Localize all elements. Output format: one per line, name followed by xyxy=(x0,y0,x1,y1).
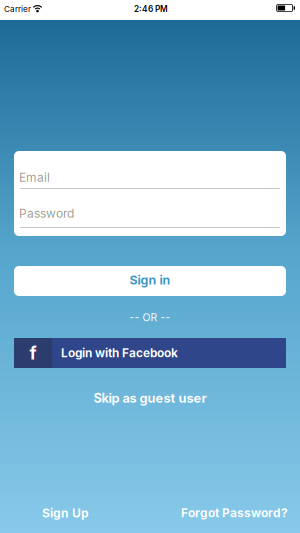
button[interactable]: Forgot Password? xyxy=(181,505,288,521)
button[interactable]: Skip as guest user xyxy=(93,390,206,406)
staticText: Password xyxy=(19,206,74,221)
staticText: Sign Up xyxy=(42,506,89,520)
staticText: f xyxy=(29,342,36,364)
staticText: Forgot Password? xyxy=(181,506,288,520)
textField[interactable]: Email xyxy=(19,170,286,185)
button[interactable]: f xyxy=(14,338,286,368)
staticText: Login with Facebook xyxy=(61,346,178,360)
staticText: Email xyxy=(19,170,50,185)
staticText: -- OR -- xyxy=(129,311,170,324)
staticText: Sign in xyxy=(129,272,170,287)
textField[interactable]: Password xyxy=(19,206,286,221)
staticText: Skip as guest user xyxy=(93,390,206,406)
staticText: 2:46 PM xyxy=(134,4,168,14)
staticText: Carrier xyxy=(4,4,31,14)
button[interactable]: Sign Up xyxy=(42,505,89,521)
button[interactable]: Sign in xyxy=(14,266,286,296)
